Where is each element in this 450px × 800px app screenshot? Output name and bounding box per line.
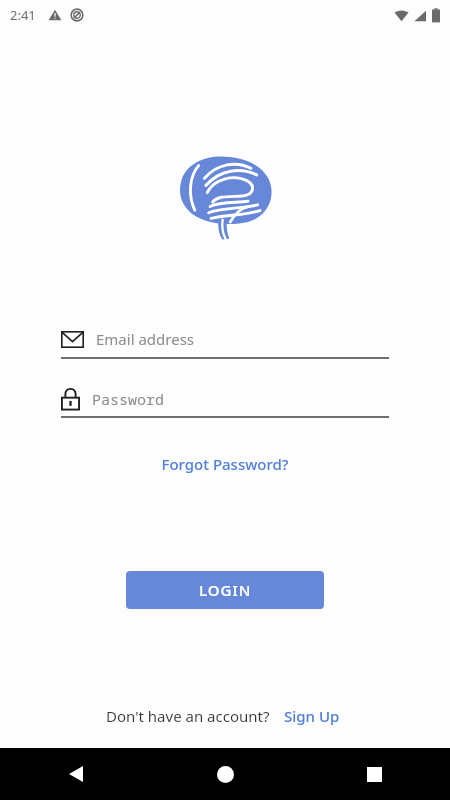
staticText: 2:41 (10, 6, 36, 24)
staticText: Password (92, 389, 165, 409)
button[interactable]: Sign Up (280, 702, 344, 730)
staticText: Don't have an account? (106, 706, 270, 726)
other: Email (61, 331, 84, 348)
button[interactable]: Home (205, 754, 245, 794)
staticText: Forgot Password? (161, 454, 289, 474)
button[interactable]: Email (61, 329, 389, 359)
button[interactable]: Back (56, 754, 96, 794)
staticText: Email address (96, 329, 195, 349)
button[interactable]: Password (61, 388, 389, 418)
button[interactable]: LOGIN (126, 571, 324, 609)
button[interactable]: Forgot Password? (155, 450, 295, 478)
button[interactable]: Recent apps (354, 754, 394, 794)
other: Password (61, 388, 80, 410)
staticText: LOGIN (199, 580, 252, 600)
staticText: Sign Up (284, 706, 340, 726)
